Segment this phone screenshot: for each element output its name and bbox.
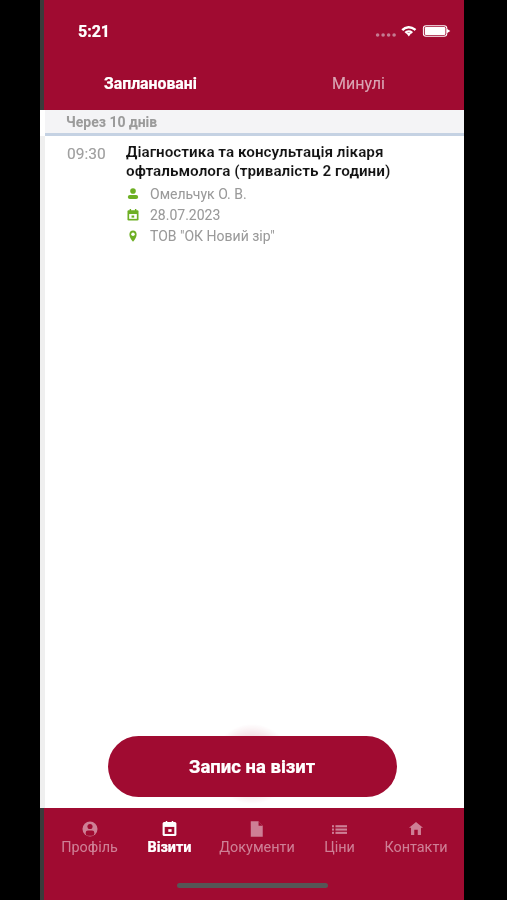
button[interactable]: 09:30 (40, 143, 464, 246)
button[interactable]: Контакти (367, 813, 464, 863)
staticText: 5:21 (78, 22, 111, 41)
staticText: Ціни (324, 839, 355, 856)
staticText: 28.07.2023 (150, 207, 221, 223)
button[interactable]: Візити (138, 813, 201, 863)
button[interactable]: Профіль (40, 813, 138, 863)
staticText: Профіль (61, 839, 118, 856)
button[interactable]: Минулі (260, 56, 457, 110)
staticText: Через 10 днів (66, 114, 158, 130)
button[interactable]: Запис на візит (108, 736, 397, 797)
staticText: Омельчук О. В. (150, 186, 247, 202)
staticText: Контакти (384, 839, 448, 856)
staticText: ТОВ "ОК Новий зір" (150, 228, 275, 244)
button[interactable]: Ціни (312, 813, 367, 863)
button[interactable]: Заплановані (40, 56, 260, 110)
staticText: Візити (147, 839, 192, 856)
button[interactable]: Документи (201, 813, 312, 863)
staticText: 09:30 (67, 145, 106, 163)
staticText: Минулі (332, 74, 385, 93)
staticText: Запис на візит (189, 756, 316, 778)
staticText: Заплановані (104, 74, 197, 93)
staticText: Документи (219, 839, 295, 856)
staticText: Діагностика та консультація лікаря офтал… (126, 143, 446, 180)
